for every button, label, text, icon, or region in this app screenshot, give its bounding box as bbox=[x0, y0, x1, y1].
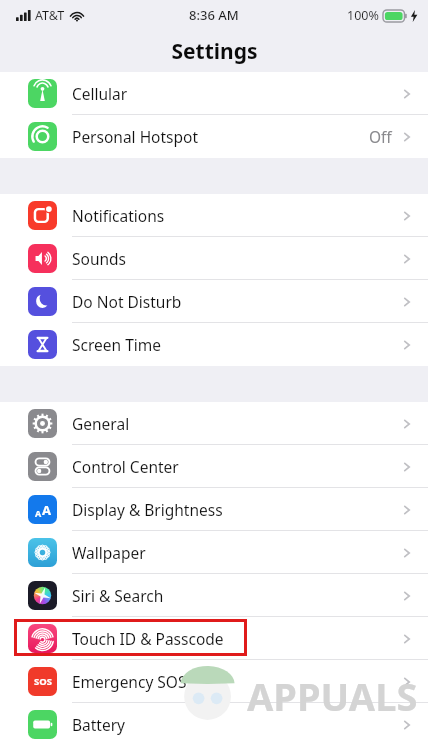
button[interactable]: A bbox=[0, 488, 428, 531]
button[interactable]: Battery bbox=[0, 703, 428, 746]
staticText: Personal Hotspot bbox=[72, 126, 199, 147]
staticText: SOS bbox=[34, 675, 52, 688]
button[interactable]: Sounds bbox=[0, 237, 428, 280]
button[interactable]: Wallpaper bbox=[0, 531, 428, 574]
staticText: Wallpaper bbox=[72, 542, 146, 563]
button[interactable]: Do Not Disturb bbox=[0, 280, 428, 323]
staticText: Display & Brightness bbox=[72, 499, 223, 520]
button[interactable]: Cellular bbox=[0, 72, 428, 115]
staticText: Notifications bbox=[72, 205, 165, 226]
staticText: Battery bbox=[72, 714, 126, 735]
staticText: Sounds bbox=[72, 248, 127, 269]
staticText: Emergency SOS bbox=[72, 671, 187, 692]
staticText: Do Not Disturb bbox=[72, 291, 182, 312]
staticText: Siri & Search bbox=[72, 585, 164, 606]
staticText: 8:36 AM bbox=[189, 6, 239, 24]
staticText: General bbox=[72, 413, 130, 434]
staticText: Settings bbox=[171, 37, 258, 66]
staticText: A bbox=[42, 501, 51, 519]
staticText: AT&T bbox=[35, 7, 65, 24]
button[interactable]: Touch ID & Passcode bbox=[0, 617, 428, 660]
button[interactable]: SOS bbox=[0, 660, 428, 703]
button[interactable]: General bbox=[0, 402, 428, 445]
button[interactable]: Personal Hotspot bbox=[0, 115, 428, 158]
staticText: APPUALS bbox=[247, 670, 418, 722]
staticText: Off bbox=[369, 126, 392, 147]
staticText: Touch ID & Passcode bbox=[72, 628, 224, 649]
button[interactable]: Screen Time bbox=[0, 323, 428, 366]
button[interactable]: Notifications bbox=[0, 194, 428, 237]
staticText: Cellular bbox=[72, 83, 128, 104]
staticText: 100% bbox=[347, 7, 379, 24]
staticText: Screen Time bbox=[72, 334, 161, 355]
button[interactable]: Control Center bbox=[0, 445, 428, 488]
staticText: A bbox=[35, 507, 42, 519]
staticText: Control Center bbox=[72, 456, 179, 477]
button[interactable]: Siri & Search bbox=[0, 574, 428, 617]
